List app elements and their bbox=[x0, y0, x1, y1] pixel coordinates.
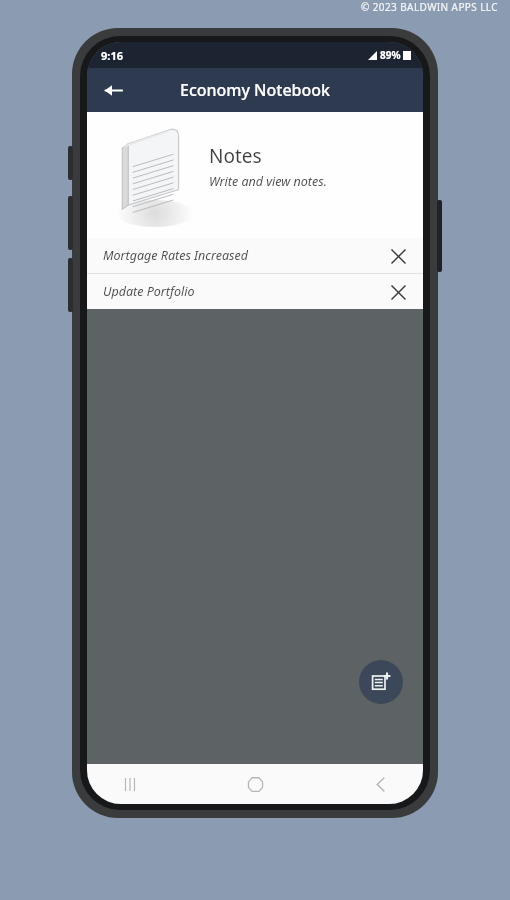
button[interactable]: Home bbox=[238, 767, 272, 801]
button[interactable]: Delete note bbox=[383, 277, 413, 307]
staticText: Write and view notes. bbox=[209, 173, 327, 190]
staticText: Mortgage Rates Increased bbox=[103, 247, 248, 264]
button[interactable]: Delete note bbox=[383, 241, 413, 271]
button[interactable]: New note bbox=[359, 660, 403, 704]
button[interactable]: Back bbox=[363, 767, 397, 801]
staticText: Update Portfolio bbox=[103, 283, 195, 300]
button[interactable]: Update Portfolio bbox=[87, 274, 423, 309]
staticText: Notes bbox=[209, 143, 262, 169]
staticText: 89% bbox=[380, 48, 401, 62]
button[interactable]: Back bbox=[95, 72, 131, 108]
staticText: 9:16 bbox=[101, 48, 123, 63]
button[interactable]: Mortgage Rates Increased bbox=[87, 238, 423, 273]
button[interactable]: Recents bbox=[113, 767, 147, 801]
staticText: Economy Notebook bbox=[180, 79, 331, 101]
staticText: © 2023 BALDWIN APPS LLC bbox=[361, 0, 498, 14]
button[interactable]: Notes bbox=[87, 112, 423, 238]
